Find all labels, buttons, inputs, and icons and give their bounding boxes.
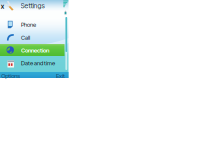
staticText: Settings — [20, 2, 44, 10]
staticText: Connection — [21, 47, 49, 54]
button[interactable]: Call — [0, 31, 64, 44]
staticText: x — [1, 2, 5, 10]
staticText: Call — [21, 34, 30, 41]
button[interactable]: Connection — [0, 44, 64, 56]
staticText: Phone — [21, 21, 36, 28]
button[interactable]: Date and time — [0, 56, 64, 69]
staticText: Exit — [56, 72, 65, 79]
staticText: Date and time — [21, 60, 55, 67]
staticText: Options — [1, 72, 20, 79]
button[interactable]: Phone — [0, 18, 64, 31]
